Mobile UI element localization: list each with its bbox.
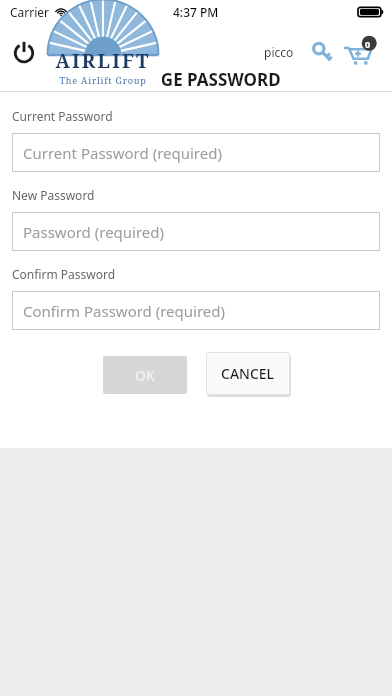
staticText: Current Password: [12, 108, 113, 124]
button[interactable]: Airlift logo: [44, 30, 162, 88]
staticText: CHANGE PASSWORD: [0, 68, 392, 91]
button[interactable]: picco: [262, 40, 296, 64]
staticText: 0: [365, 38, 371, 50]
staticText: OK: [135, 366, 155, 385]
button[interactable]: Power / Log out: [8, 36, 40, 68]
staticText: picco: [264, 44, 294, 60]
staticText: New Password: [12, 187, 95, 203]
staticText: Current Password (required): [23, 143, 222, 163]
staticText: Confirm Password: [12, 266, 116, 282]
staticText: Confirm Password (required): [23, 301, 226, 321]
button[interactable]: Current Password (required): [12, 133, 380, 172]
button[interactable]: CANCEL: [206, 352, 290, 395]
button[interactable]: Password (required): [12, 212, 380, 251]
button[interactable]: Confirm Password (required): [12, 291, 380, 330]
staticText: The Airlift Group: [44, 74, 162, 86]
staticText: Password (required): [23, 222, 165, 242]
button[interactable]: Change password: [308, 38, 336, 66]
staticText: Carrier: [10, 4, 50, 20]
button[interactable]: Cart, 0 items: [342, 35, 376, 69]
button[interactable]: OK: [103, 356, 187, 394]
staticText: AIRLIFT: [44, 48, 162, 74]
staticText: CANCEL: [221, 364, 275, 383]
staticText: 4:37 PM: [173, 4, 219, 20]
